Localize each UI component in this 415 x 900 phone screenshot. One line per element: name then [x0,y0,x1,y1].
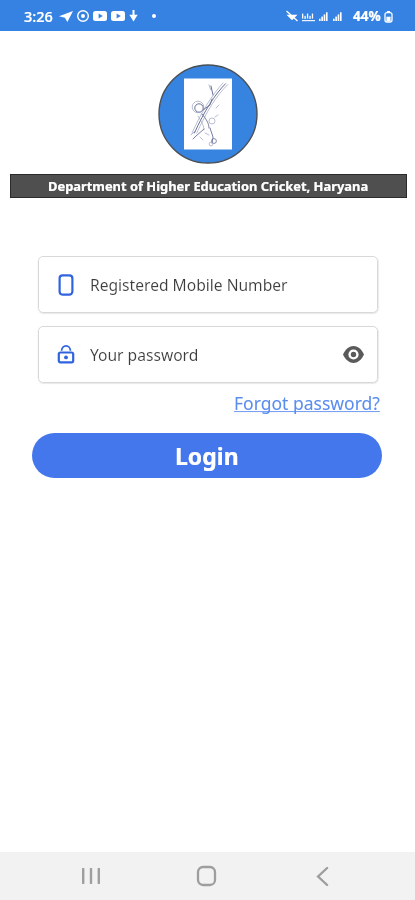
button[interactable]: Registered Mobile Number [38,256,378,313]
staticText: Department of Higher Education Cricket, … [48,177,369,195]
button[interactable]: Forgot password? [234,391,380,415]
button[interactable]: Back [284,852,361,900]
staticText: 3:26 [24,6,53,26]
button[interactable]: Show password [341,342,366,367]
button[interactable]: Recents [52,852,129,900]
button[interactable]: Your password [38,326,378,383]
button[interactable]: Home [168,852,245,900]
button[interactable]: Login [32,433,382,478]
staticText: Forgot password? [234,391,380,415]
staticText: Login [175,440,239,471]
staticText: 44% [353,7,381,25]
staticText: Registered Mobile Number [90,274,288,295]
staticText: Your password [90,344,199,365]
